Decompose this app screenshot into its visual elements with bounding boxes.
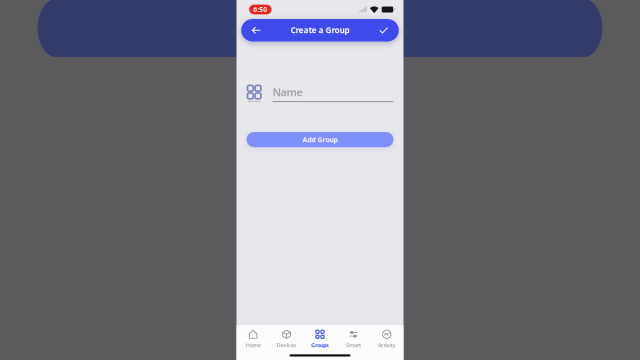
staticText: Smart [346, 342, 361, 349]
staticText: Name [272, 85, 302, 99]
button[interactable]: Back [244, 19, 268, 41]
button[interactable]: Activity [370, 329, 403, 349]
staticText: Groups [311, 342, 329, 349]
staticText: Add Group [302, 135, 337, 144]
staticText: 6:50 [253, 5, 267, 14]
staticText: Activity [378, 342, 396, 349]
button[interactable]: Groups [303, 329, 337, 349]
button[interactable]: Home [236, 329, 270, 349]
staticText: Create a Group [290, 25, 349, 35]
button[interactable]: Devices [270, 329, 303, 349]
button[interactable]: Smart [337, 329, 370, 349]
staticText: Devices [277, 342, 297, 349]
staticText: Home [246, 342, 261, 349]
button[interactable]: Done [372, 19, 396, 41]
button[interactable]: Add Group [246, 132, 393, 147]
